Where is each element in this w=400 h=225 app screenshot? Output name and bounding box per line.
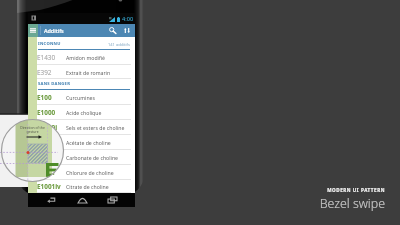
button[interactable]: E100 xyxy=(37,90,135,105)
staticText: E100 xyxy=(37,93,66,102)
staticText: E1001iv xyxy=(37,182,66,191)
button[interactable]: E1000 xyxy=(37,105,135,120)
staticText: Sels et esters de choline xyxy=(66,124,125,131)
button[interactable]: E1000ii xyxy=(37,135,135,150)
button[interactable]: Open navigation drawer xyxy=(28,24,38,37)
staticText: INCONNU xyxy=(38,41,61,47)
button[interactable]: E1430 xyxy=(37,50,135,65)
staticText: Amidon modifié xyxy=(66,54,105,61)
button[interactable]: E392 xyxy=(37,65,135,79)
staticText: Curcumines xyxy=(66,94,96,101)
staticText: E1000iii xyxy=(37,153,66,162)
staticText: Additifs xyxy=(44,27,64,34)
button[interactable]: E1000i xyxy=(37,120,135,135)
staticText: Acide cholique xyxy=(66,109,102,116)
staticText: Extrait de romarin xyxy=(66,69,111,76)
staticText: MODERN UI PATTERN xyxy=(200,187,385,193)
staticText: E1000 xyxy=(37,108,66,117)
staticText: E1000ii xyxy=(37,138,66,147)
staticText: Bezel swipe xyxy=(200,195,385,212)
button[interactable]: Search xyxy=(106,24,119,37)
button[interactable]: Sort xyxy=(120,24,133,37)
staticText: Chlorure de choline xyxy=(66,169,114,176)
staticText: E392 xyxy=(37,68,66,77)
staticText: E1000i xyxy=(37,123,66,132)
staticText: E1430 xyxy=(37,53,66,62)
staticText: Carbonate de choline xyxy=(66,154,119,161)
staticText: SANS DANGER xyxy=(38,81,71,87)
staticText: 141 additifs xyxy=(108,42,130,47)
staticText: E1001 xyxy=(37,168,66,177)
button[interactable]: E1000iii xyxy=(37,150,135,165)
staticText: Citrate de choline xyxy=(66,183,109,190)
staticText: 4:00 xyxy=(122,15,134,23)
button[interactable]: E1001iv xyxy=(37,180,135,193)
button[interactable]: Recent apps xyxy=(104,193,120,207)
button[interactable]: Home xyxy=(74,193,90,207)
button[interactable]: Back xyxy=(43,193,59,207)
staticText: Acétate de choline xyxy=(66,139,111,146)
button[interactable]: E1001 xyxy=(37,165,135,180)
staticText: Direction of the gesture xyxy=(19,125,46,134)
